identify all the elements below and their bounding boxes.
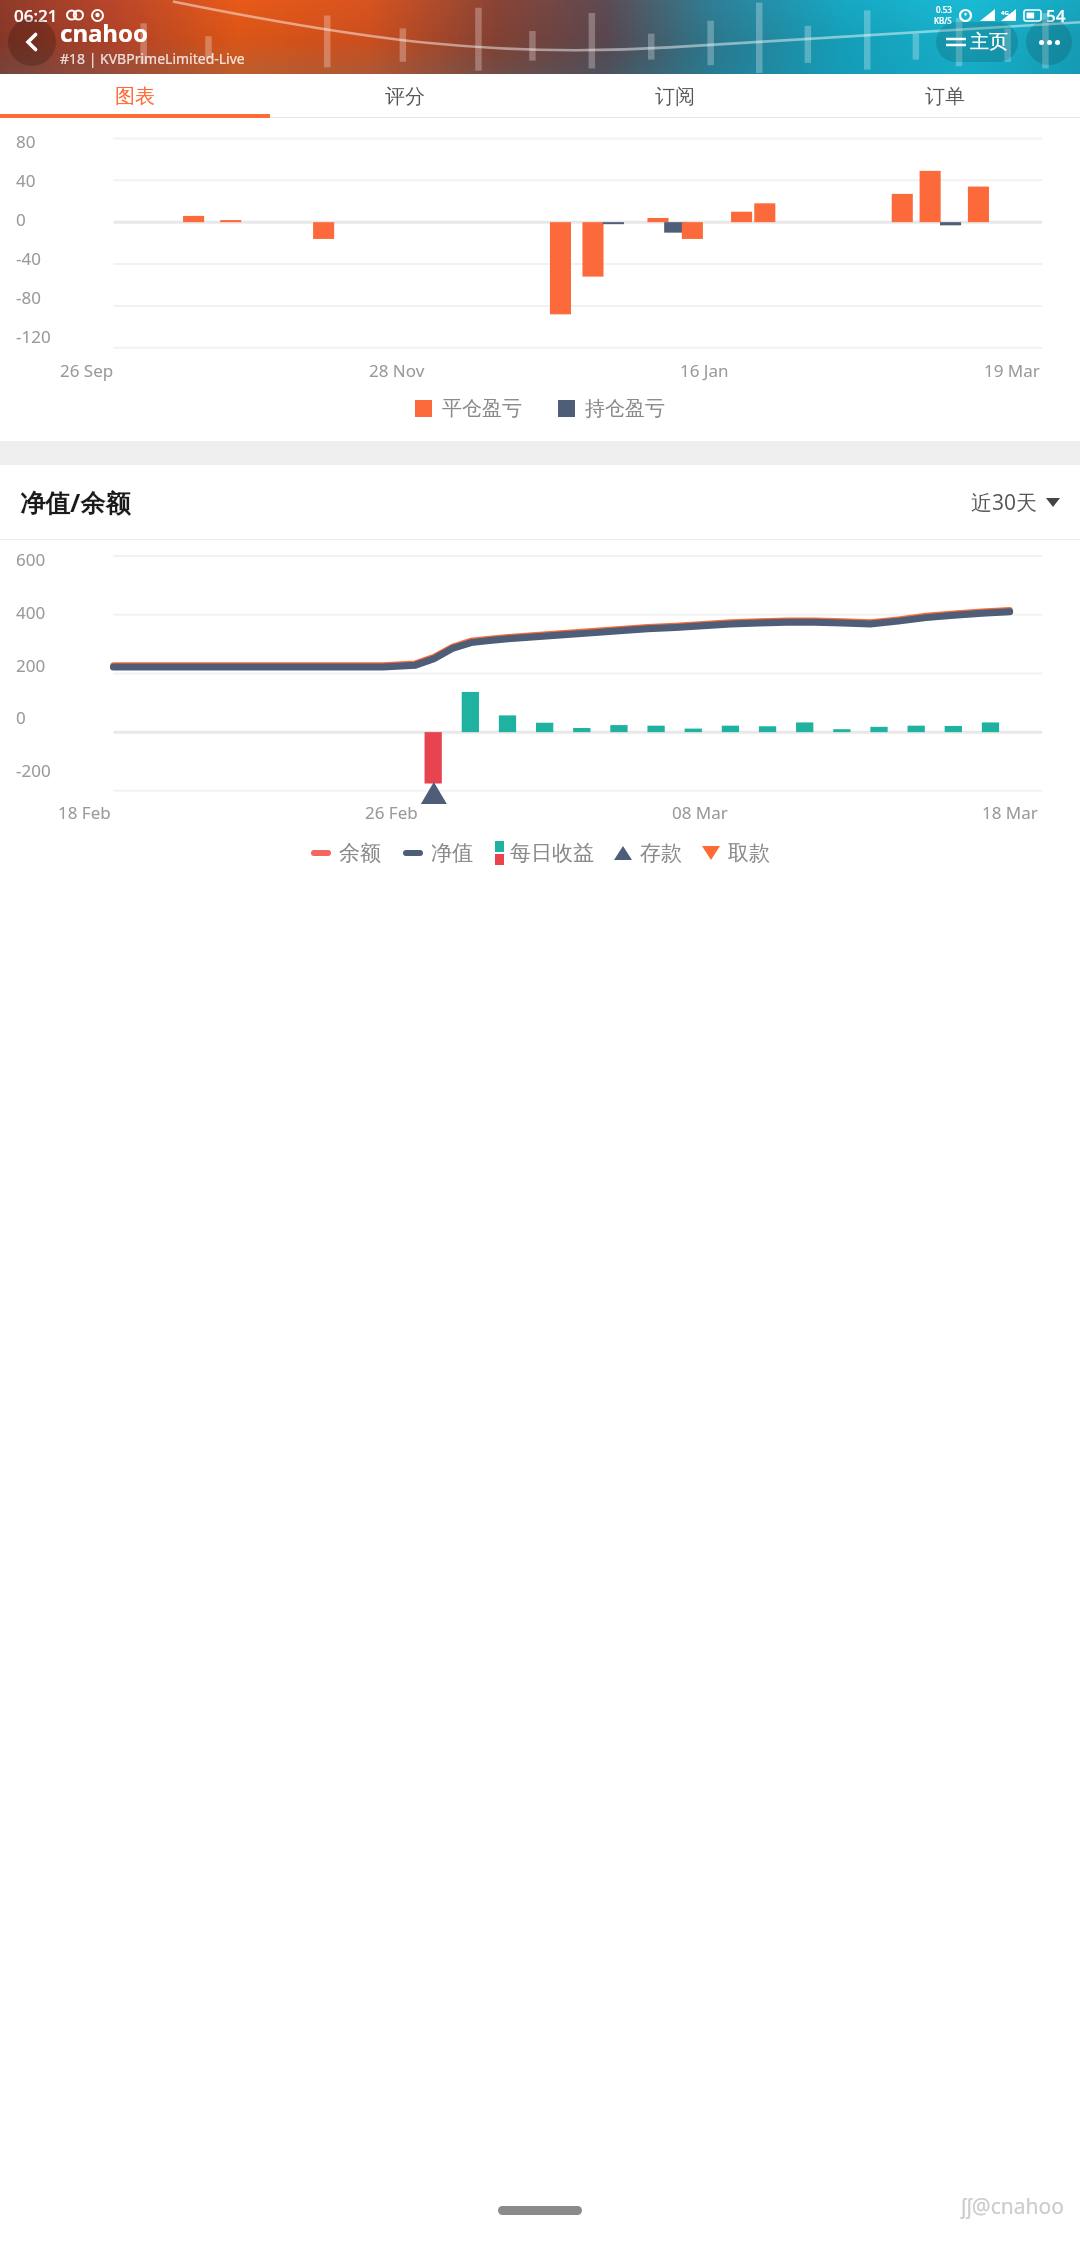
staticText: 28 Nov [369, 359, 425, 382]
staticText: 0.53 [936, 4, 952, 15]
staticText: 16 Jan [680, 359, 729, 382]
staticText: 平仓盈亏 [442, 396, 522, 421]
staticText: 主页 [970, 30, 1008, 54]
staticText: 80 [16, 130, 36, 153]
staticText: 取款 [728, 840, 770, 866]
staticText: 订单 [925, 84, 965, 109]
staticText: 0 [16, 208, 26, 231]
staticText: 图表 [115, 84, 155, 109]
staticText: -200 [16, 759, 51, 782]
staticText: 08 Mar [672, 801, 728, 824]
button[interactable]: More options [1026, 19, 1072, 65]
button[interactable]: 近30天 [971, 488, 1060, 517]
staticText: 0 [16, 706, 26, 729]
staticText: 4G [1001, 9, 1009, 17]
button[interactable]: 订单 [810, 74, 1080, 118]
staticText: 54 [1046, 4, 1066, 27]
staticText: 40 [16, 169, 36, 192]
staticText: 26 Sep [60, 359, 114, 382]
staticText: #18 | KVBPrimeLimited-Live [60, 49, 245, 68]
staticText: 持仓盈亏 [585, 396, 665, 421]
staticText: -40 [16, 247, 41, 270]
staticText: 06:21 [14, 4, 58, 27]
button[interactable]: 评分 [270, 74, 540, 118]
staticText: KB/S [934, 15, 952, 26]
button[interactable]: 图表 [0, 74, 270, 118]
staticText: 订阅 [655, 84, 695, 109]
button[interactable]: Back [8, 18, 56, 66]
staticText: 18 Feb [58, 801, 111, 824]
staticText: 400 [16, 601, 46, 624]
staticText: 评分 [385, 84, 425, 109]
staticText: 存款 [640, 840, 682, 866]
staticText: 26 Feb [365, 801, 418, 824]
button[interactable]: 主页 [936, 22, 1018, 62]
staticText: 600 [16, 548, 46, 571]
staticText: 余额 [339, 840, 381, 866]
staticText: ʃʃ@cnahoo [961, 2192, 1064, 2221]
staticText: 近30天 [971, 488, 1038, 517]
staticText: 19 Mar [984, 359, 1040, 382]
staticText: 200 [16, 654, 46, 677]
staticText: -120 [16, 325, 51, 348]
staticText: cnahoo [60, 16, 148, 49]
staticText: 净值 [431, 840, 473, 866]
staticText: 18 Mar [982, 801, 1038, 824]
staticText: -80 [16, 286, 41, 309]
staticText: 每日收益 [510, 840, 594, 866]
staticText: 净值/余额 [20, 485, 131, 519]
button[interactable]: 订阅 [540, 74, 810, 118]
